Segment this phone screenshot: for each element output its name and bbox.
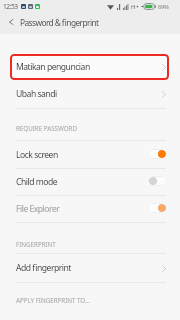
staticText: Child mode [16, 176, 58, 188]
staticText: APPLY FINGERPRINT TO... [16, 296, 90, 305]
button[interactable]: Ubah sandi [0, 80, 180, 108]
staticText: 69% [158, 3, 169, 11]
button[interactable]: Back [0, 13, 21, 34]
button[interactable]: File Explorer [0, 196, 180, 222]
staticText: Lock screen [16, 149, 58, 161]
staticText: 12:53 [3, 2, 18, 11]
button[interactable]: Child mode [0, 169, 180, 195]
button[interactable]: Lock screen [0, 141, 180, 168]
staticText: REQUIRE PASSWORD [16, 124, 77, 133]
staticText: Matikan penguncian [16, 61, 90, 73]
staticText: FINGERPRINT [16, 240, 56, 249]
other: Wi-Fi [107, 4, 114, 10]
staticText: Ubah sandi [16, 88, 57, 100]
button[interactable]: Add fingerprint [0, 254, 180, 282]
staticText: H+ [131, 3, 139, 11]
staticText: File Explorer [16, 203, 60, 215]
staticText: Add fingerprint [16, 262, 71, 274]
staticText: Password & fingerprint [20, 17, 99, 28]
other: Battery [141, 3, 156, 10]
button[interactable]: Matikan penguncian [10, 54, 169, 80]
